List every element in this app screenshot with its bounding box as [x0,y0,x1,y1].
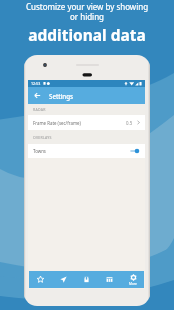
button[interactable]: Frame Rate (sec/frame) [28,115,145,130]
staticText: RADAR [33,107,46,112]
button[interactable]: Towns [28,144,145,158]
staticText: Frame Rate (sec/frame) [33,120,81,126]
staticText: 0.5 [126,120,133,126]
staticText: additional data [0,24,174,45]
staticText: Towns [33,148,46,154]
button[interactable]: Back [28,87,145,104]
staticText: 12:53 [31,81,41,86]
staticText: More [129,282,137,286]
button[interactable]: Favorites [29,271,52,288]
button[interactable]: Back [33,91,42,100]
button[interactable]: Table [98,271,121,288]
staticText: Settings [49,92,74,100]
staticText: OVERLAYS [33,135,52,140]
button[interactable]: Temperature [75,271,98,288]
staticText: Customize your view by showing or hiding [0,1,174,22]
button[interactable]: More [121,271,144,288]
button[interactable]: Send [52,271,75,288]
